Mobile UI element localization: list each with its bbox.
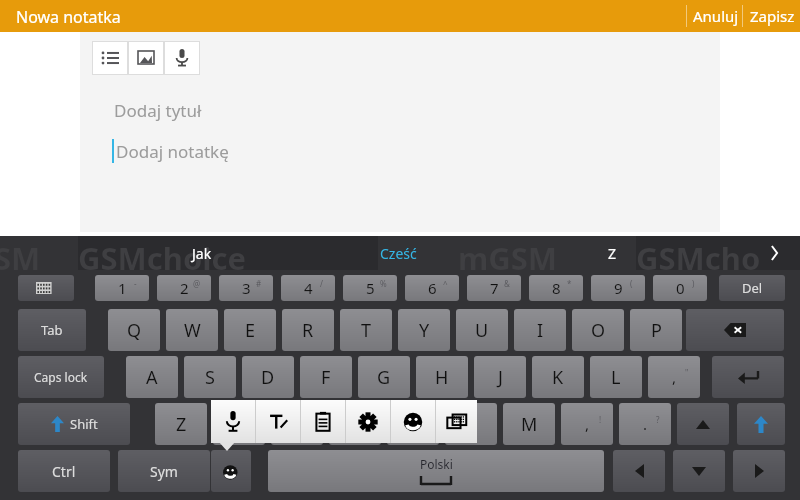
button[interactable]: Zapisz — [746, 0, 798, 32]
button[interactable]: I — [514, 309, 566, 351]
staticText: Polski — [420, 456, 453, 472]
staticText: K — [552, 365, 564, 390]
button[interactable]: Shift up — [737, 403, 785, 445]
staticText: 3 — [242, 278, 251, 298]
button[interactable]: 4 — [281, 275, 335, 301]
button[interactable]: M — [503, 403, 555, 445]
staticText: U — [475, 318, 489, 343]
button[interactable]: 3 — [219, 275, 273, 301]
button[interactable]: G — [358, 356, 410, 398]
staticText: ? — [656, 414, 660, 425]
button[interactable]: X — [213, 403, 265, 445]
button[interactable]: 0 — [653, 275, 707, 301]
button[interactable]: Insert image — [128, 41, 164, 75]
button[interactable]: Ctrl — [18, 450, 110, 492]
button[interactable]: R — [282, 309, 334, 351]
staticText: 8 — [552, 278, 561, 298]
button[interactable]: . — [619, 403, 671, 445]
staticText: , — [585, 414, 590, 434]
staticText: M — [521, 412, 538, 437]
button[interactable]: 8 — [529, 275, 583, 301]
button[interactable]: B — [387, 403, 439, 445]
button[interactable]: Enter — [712, 356, 784, 398]
button[interactable]: D — [242, 356, 294, 398]
button[interactable]: Voice note — [164, 41, 200, 75]
button[interactable]: Anuluj — [690, 0, 742, 32]
staticText: Dodaj tytuł — [114, 99, 202, 122]
button[interactable]: V — [329, 403, 381, 445]
button[interactable]: A — [126, 356, 178, 398]
button[interactable]: Voice input — [211, 400, 255, 443]
button[interactable]: Down — [673, 450, 725, 492]
button[interactable]: S — [184, 356, 236, 398]
button[interactable]: 7 — [467, 275, 521, 301]
button[interactable]: Space — [268, 450, 604, 492]
button[interactable]: H — [416, 356, 468, 398]
button[interactable]: 2 — [157, 275, 211, 301]
button[interactable]: Keyboard — [436, 400, 477, 443]
button[interactable]: Settings — [346, 400, 390, 443]
button[interactable]: , — [561, 403, 613, 445]
button[interactable]: K — [532, 356, 584, 398]
button[interactable]: T — [340, 309, 392, 351]
staticText: D — [261, 365, 275, 390]
button[interactable]: Cześć — [376, 236, 420, 270]
button[interactable]: O — [572, 309, 624, 351]
button[interactable]: 9 — [591, 275, 645, 301]
button[interactable]: E — [224, 309, 276, 351]
button[interactable]: Emoji — [391, 400, 435, 443]
button[interactable]: L — [590, 356, 642, 398]
button[interactable]: Q — [108, 309, 160, 351]
button[interactable]: Bulleted list — [92, 41, 128, 75]
staticText: W — [184, 318, 201, 343]
button[interactable]: Hide keyboard — [18, 275, 74, 301]
button[interactable]: Left — [613, 450, 665, 492]
staticText: G — [377, 365, 391, 390]
button[interactable]: Jak — [180, 236, 224, 270]
button[interactable]: More suggestions — [760, 239, 788, 267]
staticText: L — [611, 365, 621, 390]
staticText: O — [591, 318, 606, 343]
staticText: 6 — [428, 278, 437, 298]
button[interactable]: U — [456, 309, 508, 351]
button[interactable]: P — [630, 309, 682, 351]
button[interactable]: Z — [590, 236, 634, 270]
staticText: Jak — [192, 244, 212, 263]
button[interactable]: Y — [398, 309, 450, 351]
button[interactable]: Emoji — [211, 450, 251, 492]
staticText: 0 — [676, 278, 685, 298]
staticText: Z — [176, 412, 187, 437]
button[interactable]: J — [474, 356, 526, 398]
button[interactable]: 6 — [405, 275, 459, 301]
staticText: 1 — [118, 278, 127, 298]
staticText: S — [205, 365, 215, 390]
button[interactable]: Sym — [118, 450, 210, 492]
button[interactable]: C — [271, 403, 323, 445]
button[interactable]: Right — [733, 450, 785, 492]
staticText: ^ — [443, 278, 448, 289]
button[interactable]: Clipboard — [301, 400, 345, 443]
staticText: 4 — [304, 278, 313, 298]
button[interactable]: F — [300, 356, 352, 398]
button[interactable]: W — [166, 309, 218, 351]
button[interactable]: Z — [155, 403, 207, 445]
button[interactable]: Handwriting — [256, 400, 300, 443]
button[interactable]: Del — [719, 275, 785, 301]
button[interactable]: N — [445, 403, 497, 445]
button[interactable]: 1 — [95, 275, 149, 301]
button[interactable]: Up — [677, 403, 729, 445]
button[interactable]: Shift — [18, 403, 130, 445]
staticText: 9 — [614, 278, 623, 298]
button[interactable]: Caps lock — [18, 356, 104, 398]
staticText: Cześć — [380, 244, 417, 263]
staticText: & — [504, 278, 510, 289]
staticText: Sym — [150, 462, 178, 481]
button[interactable]: 5 — [343, 275, 397, 301]
button[interactable]: , — [648, 356, 700, 398]
staticText: / — [320, 278, 323, 289]
button[interactable]: Backspace — [686, 309, 784, 351]
staticText: Nowa notatka — [16, 6, 121, 28]
staticText: P — [651, 318, 662, 343]
staticText: ) — [692, 278, 695, 289]
button[interactable]: Tab — [18, 309, 86, 351]
